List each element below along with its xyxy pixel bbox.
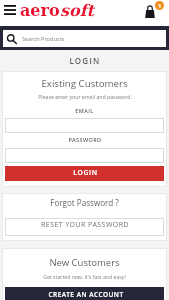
staticText: Forgot Password ? [50, 197, 119, 208]
staticText: soft [60, 1, 94, 20]
button[interactable]: CREATE AN ACCOUNT [5, 287, 164, 300]
button[interactable] [5, 148, 164, 163]
button[interactable]: LOGIN [5, 166, 164, 181]
staticText: New Customers [49, 256, 120, 269]
staticText: 1 [158, 2, 162, 10]
staticText: aero [20, 1, 60, 20]
staticText: RESET YOUR PASSWORD [41, 220, 129, 230]
staticText: Existing Customers [41, 77, 128, 90]
staticText: PASSWORD [68, 136, 102, 143]
button[interactable]: RESET YOUR PASSWORD [5, 218, 164, 236]
staticText: LOGIN [69, 55, 101, 66]
staticText: Get started now. It's fast and easy! [43, 273, 126, 280]
staticText: Please enter your email and password. [38, 93, 132, 100]
button[interactable]: Shopping bag, 1 item [143, 0, 165, 20]
button[interactable]: Search Products [3, 30, 166, 47]
staticText: CREATE AN ACCOUNT [48, 290, 124, 299]
button[interactable]: Open navigation menu [4, 5, 16, 15]
button[interactable] [5, 118, 164, 133]
staticText: Search Products [22, 35, 65, 43]
staticText: LOGIN [73, 168, 98, 177]
staticText: EMAIL [75, 107, 94, 114]
